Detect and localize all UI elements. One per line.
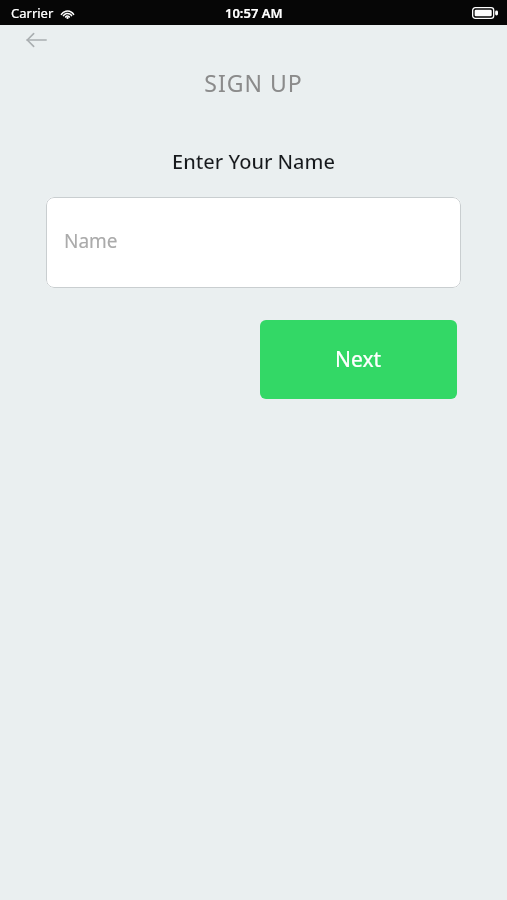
- staticText: Enter Your Name: [0, 148, 507, 175]
- staticText: Carrier: [11, 4, 54, 22]
- staticText: 10:57 AM: [225, 4, 283, 22]
- staticText: SIGN UP: [0, 67, 507, 98]
- staticText: Next: [335, 345, 382, 374]
- button[interactable]: Back: [18, 25, 54, 55]
- button[interactable]: Name: [46, 197, 461, 288]
- staticText: Name: [64, 228, 118, 254]
- button[interactable]: Next: [260, 320, 457, 399]
